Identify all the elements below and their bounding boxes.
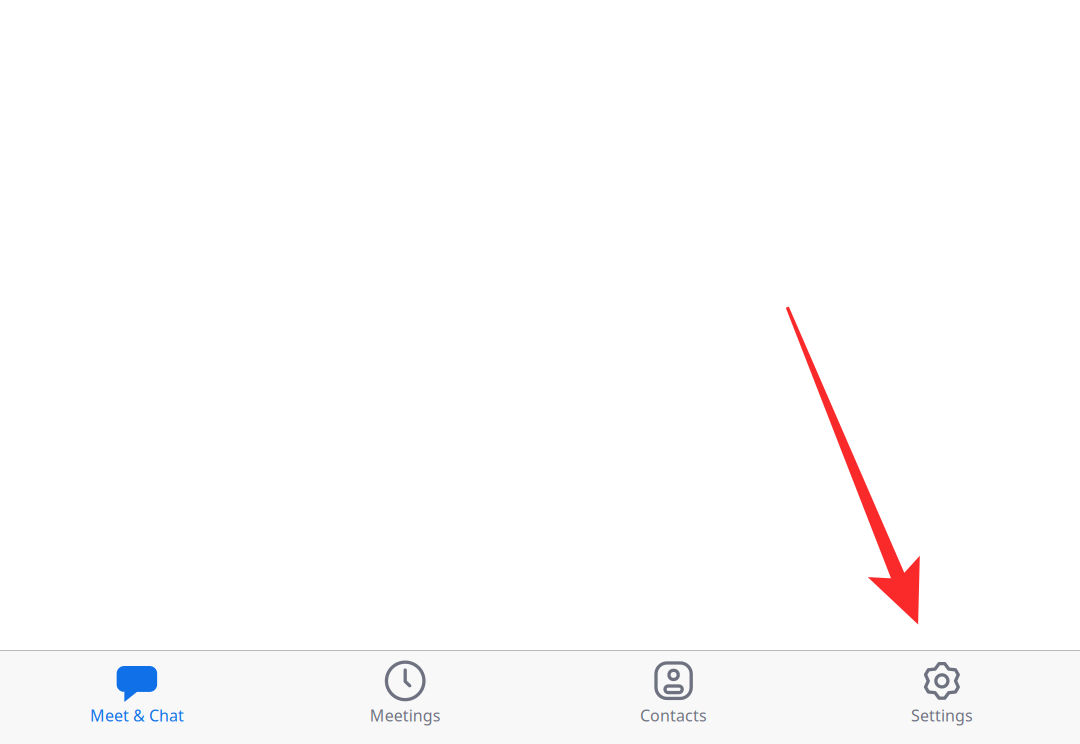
button[interactable]: Contacts [540, 651, 810, 744]
staticText: Meet & Chat [90, 705, 184, 726]
button[interactable]: Meetings [270, 651, 540, 744]
button[interactable]: Meet & Chat [0, 651, 270, 744]
staticText: Contacts [640, 705, 707, 726]
button[interactable]: Settings [810, 651, 1080, 744]
staticText: Meetings [370, 705, 441, 726]
staticText: Settings [911, 705, 973, 726]
